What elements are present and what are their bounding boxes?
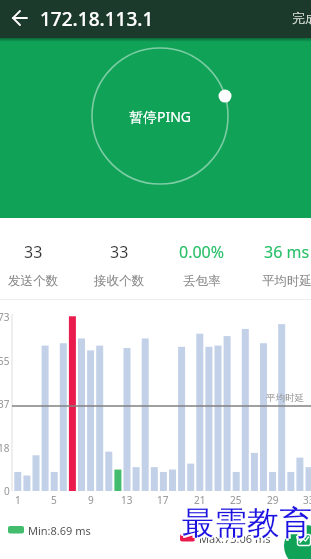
staticText: 73 — [0, 310, 10, 324]
staticText: 33 — [110, 241, 129, 263]
staticText: 37 — [0, 397, 10, 411]
staticText: 36 ms — [264, 241, 310, 263]
staticText: 最需教育 — [182, 505, 311, 546]
staticText: 18 — [0, 441, 10, 455]
staticText: 21 — [194, 493, 206, 507]
staticText: 0 — [4, 484, 10, 498]
staticText: 最需教育 — [182, 501, 311, 542]
button[interactable]: 完成 — [290, 6, 311, 30]
staticText: 最需教育 — [184, 503, 311, 544]
staticText: 完成 — [292, 10, 311, 26]
staticText: 最需教育 — [182, 503, 311, 544]
staticText: Max:73.06 ms — [199, 531, 271, 546]
staticText: 25 — [230, 493, 242, 507]
staticText: 5 — [51, 493, 57, 507]
staticText: 9 — [88, 493, 94, 507]
button[interactable] — [284, 525, 311, 559]
staticText: 暂停PING — [129, 107, 192, 126]
staticText: 1 — [15, 493, 21, 507]
staticText: 丢包率 — [183, 273, 221, 289]
staticText: 发送个数 — [8, 273, 58, 289]
staticText: Min:8.69 ms — [28, 523, 91, 538]
button[interactable] — [6, 7, 30, 31]
staticText: 33 — [303, 493, 311, 507]
staticText: 55 — [0, 354, 10, 368]
staticText: 13 — [121, 493, 133, 507]
staticText: 172.18.113.1 — [40, 6, 154, 32]
staticText: 平均时延 — [262, 273, 311, 289]
staticText: 平均时延 — [266, 392, 304, 404]
staticText: 29 — [267, 493, 279, 507]
staticText: 33 — [24, 241, 43, 263]
staticText: 最需教育 — [180, 503, 310, 544]
button[interactable]: 暂停PING — [93, 49, 227, 183]
staticText: 接收个数 — [94, 273, 144, 289]
staticText: 17 — [157, 493, 169, 507]
staticText: 0.00% — [179, 241, 225, 263]
